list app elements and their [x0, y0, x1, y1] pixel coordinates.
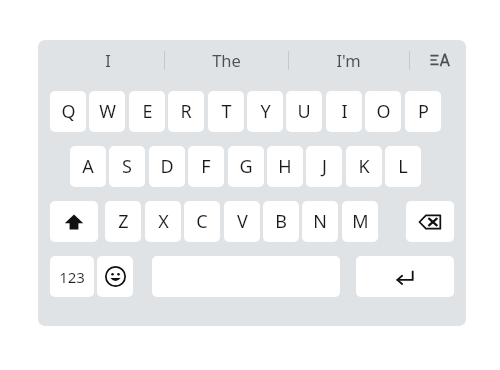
- staticText: X: [158, 209, 169, 234]
- button[interactable]: The: [166, 40, 286, 80]
- staticText: 123: [59, 267, 85, 287]
- staticText: J: [322, 154, 327, 179]
- button[interactable]: O: [365, 91, 401, 132]
- button[interactable]: G: [228, 146, 264, 187]
- button[interactable]: I: [326, 91, 362, 132]
- button[interactable]: W: [89, 91, 125, 132]
- button[interactable]: C: [184, 201, 220, 242]
- button[interactable]: I'm: [291, 40, 406, 80]
- staticText: K: [358, 154, 370, 179]
- button[interactable]: Enter: [356, 256, 454, 297]
- button[interactable]: H: [267, 146, 303, 187]
- staticText: O: [376, 99, 391, 124]
- button[interactable]: D: [149, 146, 185, 187]
- staticText: V: [237, 209, 248, 234]
- staticText: S: [122, 154, 132, 179]
- button[interactable]: F: [188, 146, 224, 187]
- staticText: H: [278, 154, 292, 179]
- button[interactable]: Backspace: [406, 201, 454, 242]
- button[interactable]: A: [70, 146, 106, 187]
- button[interactable]: X: [145, 201, 181, 242]
- button[interactable]: E: [129, 91, 165, 132]
- button[interactable]: J: [306, 146, 342, 187]
- staticText: Z: [118, 209, 129, 234]
- button[interactable]: V: [224, 201, 260, 242]
- staticText: The: [212, 49, 241, 71]
- button[interactable]: Z: [105, 201, 141, 242]
- staticText: C: [196, 209, 208, 234]
- button[interactable]: L: [385, 146, 421, 187]
- button[interactable]: 123: [50, 256, 94, 297]
- button[interactable]: P: [405, 91, 441, 132]
- staticText: A: [82, 154, 94, 179]
- button[interactable]: Emoji: [97, 256, 133, 297]
- button[interactable]: M: [342, 201, 378, 242]
- staticText: N: [313, 209, 327, 234]
- staticText: E: [142, 99, 153, 124]
- staticText: D: [160, 154, 174, 179]
- button[interactable]: Y: [247, 91, 283, 132]
- button[interactable]: T: [208, 91, 244, 132]
- staticText: L: [398, 154, 408, 179]
- button[interactable]: Q: [50, 91, 86, 132]
- button[interactable]: N: [302, 201, 338, 242]
- button[interactable]: S: [109, 146, 145, 187]
- staticText: P: [418, 99, 429, 124]
- staticText: F: [201, 154, 211, 179]
- staticText: W: [99, 99, 116, 124]
- button[interactable]: Text formatting: [414, 40, 466, 80]
- staticText: B: [275, 209, 287, 234]
- button[interactable]: I: [50, 40, 165, 80]
- button[interactable]: K: [346, 146, 382, 187]
- staticText: I: [341, 99, 348, 124]
- staticText: Y: [260, 99, 271, 124]
- staticText: I: [105, 49, 111, 71]
- button[interactable]: U: [286, 91, 322, 132]
- staticText: T: [221, 99, 232, 124]
- staticText: M: [352, 209, 369, 234]
- button[interactable]: Shift: [50, 201, 98, 242]
- staticText: Q: [61, 99, 76, 124]
- button[interactable]: R: [168, 91, 204, 132]
- button[interactable]: B: [263, 201, 299, 242]
- staticText: U: [297, 99, 311, 124]
- staticText: G: [239, 154, 253, 179]
- staticText: R: [180, 99, 192, 124]
- staticText: I'm: [336, 49, 361, 71]
